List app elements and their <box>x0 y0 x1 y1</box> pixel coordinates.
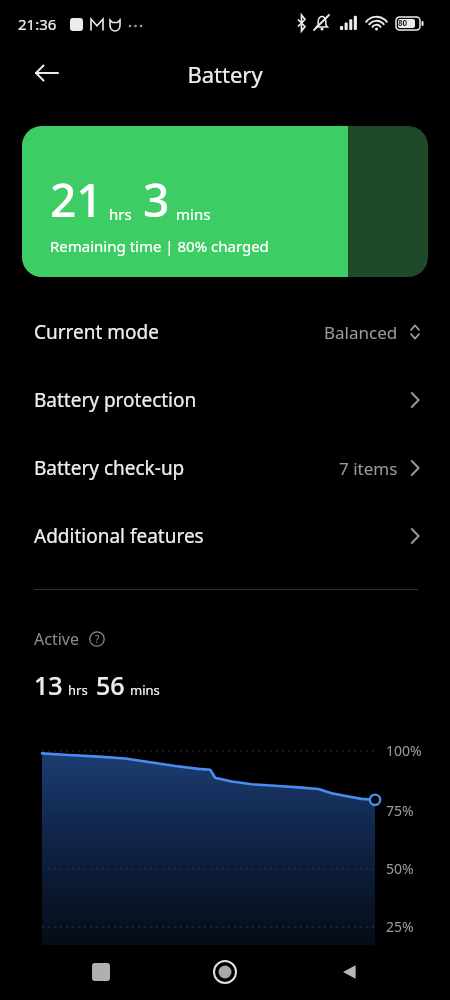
staticText: ? <box>95 632 100 646</box>
staticText: Balanced <box>324 321 398 344</box>
button[interactable]: Battery check-up <box>0 434 450 502</box>
button[interactable]: Back <box>24 50 70 96</box>
button[interactable]: Current mode <box>0 298 450 366</box>
staticText: mins <box>176 204 211 224</box>
staticText: 100% <box>386 741 422 760</box>
staticText: 3 <box>143 168 170 231</box>
staticText: hrs <box>68 681 88 699</box>
staticText: 50% <box>386 859 414 878</box>
staticText: Battery check-up <box>34 455 185 481</box>
button[interactable]: Additional features <box>0 502 450 570</box>
button[interactable]: Back <box>326 948 374 996</box>
staticText: 75% <box>386 801 414 820</box>
button[interactable]: Home <box>201 948 249 996</box>
staticText: 7 items <box>339 457 398 480</box>
staticText: 21:36 <box>18 14 57 34</box>
staticText: 13 <box>34 668 63 702</box>
button[interactable]: Recent apps <box>77 948 125 996</box>
staticText: hrs <box>109 204 132 224</box>
button[interactable]: 21 <box>22 126 428 277</box>
staticText: Active <box>34 628 79 650</box>
button[interactable]: About active time <box>86 628 108 650</box>
staticText: Additional features <box>34 523 204 549</box>
staticText: Battery <box>0 59 450 89</box>
button[interactable]: Battery protection <box>0 366 450 434</box>
staticText: 80 <box>398 17 408 28</box>
staticText: 25% <box>386 917 414 936</box>
staticText: Battery protection <box>34 387 197 413</box>
staticText: mins <box>130 681 160 699</box>
staticText: Remaining time | 80% charged <box>50 236 269 256</box>
staticText: 56 <box>96 668 125 702</box>
staticText: Current mode <box>34 319 159 345</box>
staticText: 21 <box>50 168 103 231</box>
